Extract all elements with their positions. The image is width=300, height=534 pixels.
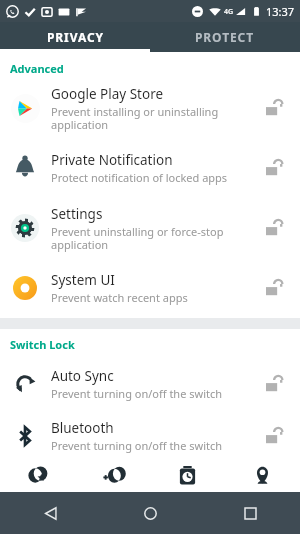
button[interactable]: Toggle lock for Google Play Store — [262, 95, 288, 121]
button[interactable]: Timer — [150, 458, 225, 492]
staticText: Bluetooth — [51, 419, 114, 437]
staticText: Auto Sync — [51, 367, 114, 385]
button[interactable]: Auto Sync — [0, 354, 300, 414]
button[interactable]: Recent apps — [235, 498, 265, 528]
button[interactable]: Private Notification — [0, 138, 300, 198]
button[interactable]: PROTECT — [150, 22, 300, 52]
button[interactable]: Google Play Store — [0, 78, 300, 138]
button[interactable]: Toggle lock for Private Notification — [262, 155, 288, 181]
button[interactable]: Bluetooth — [0, 414, 300, 458]
button[interactable]: Toggle lock for System UI — [262, 275, 288, 301]
button[interactable]: Home — [135, 498, 165, 528]
staticText: Google Play Store — [51, 85, 164, 103]
button[interactable]: Settings — [0, 198, 300, 258]
button[interactable]: Night mode — [0, 458, 75, 492]
staticText: PRIVACY — [47, 29, 104, 45]
button[interactable]: Location — [225, 458, 300, 492]
staticText: Prevent uninstalling or force-stop appli… — [51, 224, 224, 252]
button[interactable]: PRIVACY — [0, 22, 150, 52]
staticText: 13:37 — [266, 4, 295, 19]
button[interactable]: Toggle lock for Settings — [262, 215, 288, 241]
staticText: Settings — [51, 205, 103, 223]
button[interactable]: System UI — [0, 258, 300, 318]
staticText: Private Notification — [51, 151, 173, 169]
button[interactable]: Toggle lock for Bluetooth — [262, 423, 288, 449]
staticText: Prevent turning on/off the switch — [51, 386, 223, 401]
button[interactable]: Add night schedule — [75, 458, 150, 492]
staticText: Prevent turning on/off the switch — [51, 438, 223, 453]
staticText: Prevent watch recent apps — [51, 290, 188, 305]
staticText: Switch Lock — [10, 337, 75, 352]
staticText: Prevent installing or uninstalling appli… — [51, 104, 219, 132]
staticText: Advanced — [10, 61, 64, 76]
staticText: System UI — [51, 271, 115, 289]
button[interactable]: Back — [35, 498, 65, 528]
staticText: 4G — [224, 7, 234, 17]
staticText: Protect notification of locked apps — [51, 170, 228, 185]
button[interactable]: Toggle lock for Auto Sync — [262, 371, 288, 397]
staticText: PROTECT — [195, 29, 255, 45]
